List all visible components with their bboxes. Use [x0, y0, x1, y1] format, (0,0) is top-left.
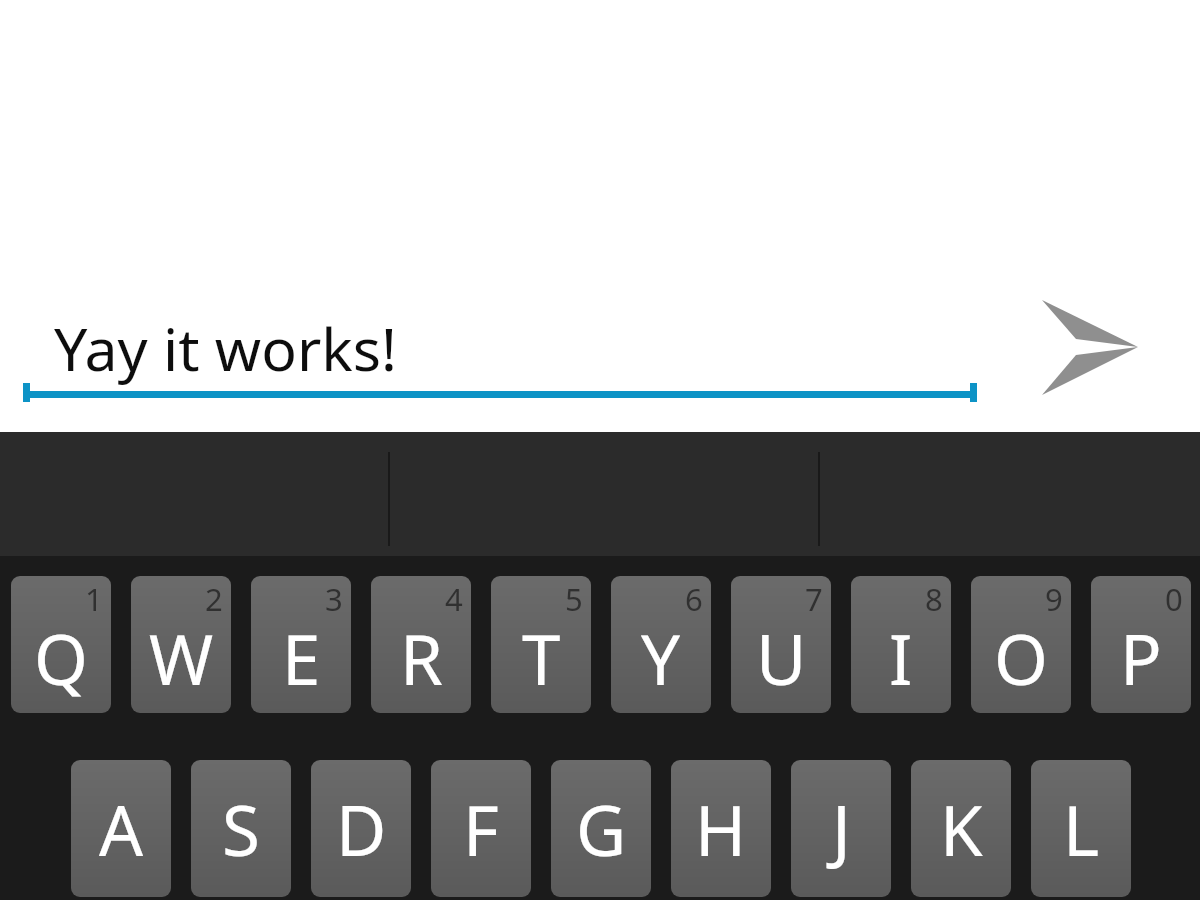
staticText: 7: [805, 578, 823, 620]
staticText: L: [1063, 782, 1100, 876]
staticText: 0: [1165, 578, 1183, 620]
staticText: A: [99, 782, 144, 876]
staticText: S: [222, 782, 260, 876]
staticText: R: [400, 611, 443, 705]
button[interactable]: D: [311, 760, 411, 897]
button[interactable]: Send: [1024, 288, 1150, 406]
staticText: 5: [565, 578, 583, 620]
button[interactable]: 2: [131, 576, 231, 713]
button[interactable]: S: [191, 760, 291, 897]
button[interactable]: 3: [251, 576, 351, 713]
staticText: K: [940, 782, 983, 876]
button[interactable]: K: [911, 760, 1011, 897]
staticText: P: [1120, 611, 1162, 705]
staticText: F: [463, 782, 499, 876]
button[interactable]: 0: [1091, 576, 1191, 713]
staticText: 1: [85, 578, 103, 620]
staticText: 9: [1045, 578, 1063, 620]
staticText: H: [695, 782, 747, 876]
staticText: Yay it works!: [54, 308, 397, 388]
staticText: 4: [445, 578, 463, 620]
button[interactable]: H: [671, 760, 771, 897]
staticText: 2: [205, 578, 223, 620]
staticText: J: [832, 782, 851, 876]
button[interactable]: L: [1031, 760, 1131, 897]
staticText: G: [576, 782, 627, 876]
staticText: 8: [925, 578, 943, 620]
button[interactable]: 1: [11, 576, 111, 713]
button[interactable]: 8: [851, 576, 951, 713]
staticText: Q: [34, 611, 88, 705]
button[interactable]: G: [551, 760, 651, 897]
button[interactable]: J: [791, 760, 891, 897]
button[interactable]: 5: [491, 576, 591, 713]
button[interactable]: A: [71, 760, 171, 897]
button[interactable]: 4: [371, 576, 471, 713]
staticText: D: [336, 782, 387, 876]
button[interactable]: Yay it works!: [23, 296, 977, 400]
staticText: E: [282, 611, 321, 705]
button[interactable]: 7: [731, 576, 831, 713]
staticText: 6: [685, 578, 703, 620]
staticText: U: [756, 611, 807, 705]
button[interactable]: 9: [971, 576, 1071, 713]
staticText: O: [994, 611, 1048, 705]
staticText: 3: [325, 578, 343, 620]
staticText: I: [889, 611, 913, 705]
button[interactable]: 6: [611, 576, 711, 713]
staticText: W: [149, 611, 214, 705]
button[interactable]: F: [431, 760, 531, 897]
staticText: T: [522, 611, 561, 705]
staticText: Y: [641, 611, 681, 705]
